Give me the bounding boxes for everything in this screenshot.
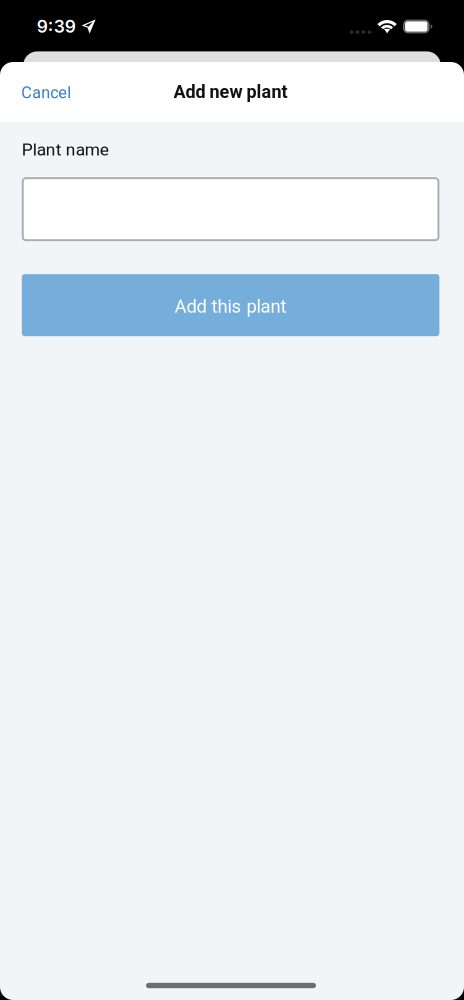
- staticText: Add this plant: [175, 296, 287, 317]
- button[interactable]: Cancel: [16, 72, 76, 113]
- staticText: Add new plant: [173, 81, 287, 102]
- button[interactable]: Add this plant: [22, 274, 439, 336]
- staticText: Cancel: [21, 83, 71, 102]
- staticText: 9:39: [37, 16, 76, 37]
- staticText: Plant name: [22, 139, 109, 160]
